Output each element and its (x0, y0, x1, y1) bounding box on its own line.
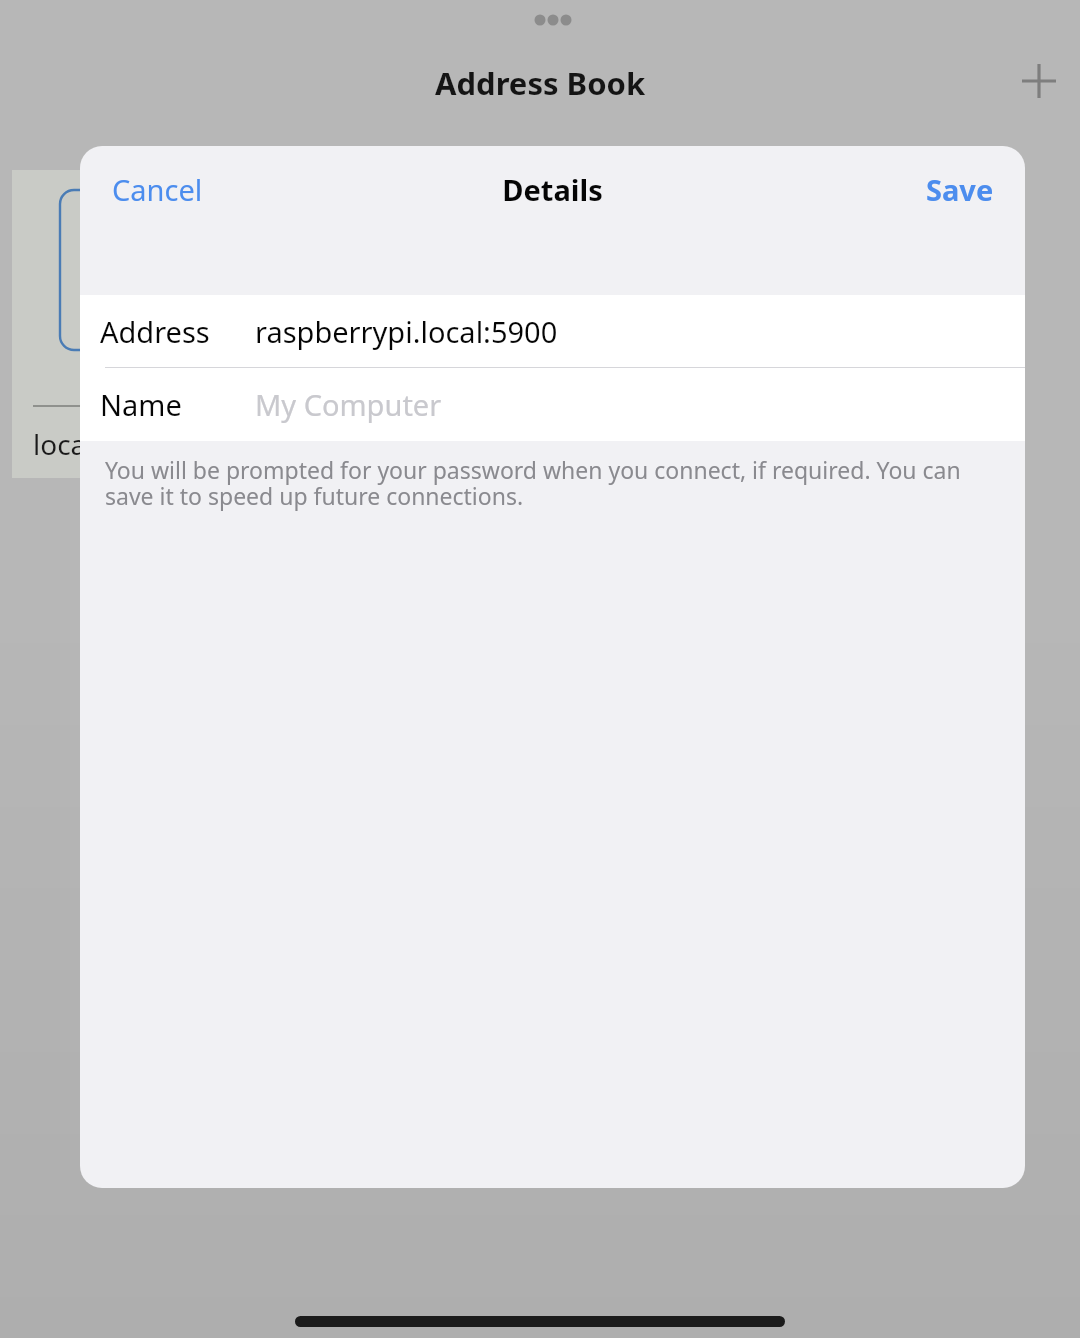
staticText: raspberrypi.local:5900 (255, 312, 558, 351)
button[interactable]: Save (912, 162, 1008, 217)
button[interactable]: Name (80, 368, 1025, 440)
staticText: Details (502, 170, 603, 209)
button[interactable]: Address (80, 295, 1025, 367)
staticText: You will be prompted for your password w… (105, 454, 983, 512)
staticText: Cancel (112, 170, 203, 209)
staticText: Address Book (435, 62, 646, 104)
staticText: Address (100, 312, 255, 351)
staticText: local (33, 425, 94, 463)
staticText: My Computer (255, 385, 442, 424)
staticText: Name (100, 385, 255, 424)
staticText: Save (926, 170, 994, 209)
button[interactable]: Add (1009, 51, 1069, 111)
button[interactable]: Cancel (98, 162, 217, 217)
